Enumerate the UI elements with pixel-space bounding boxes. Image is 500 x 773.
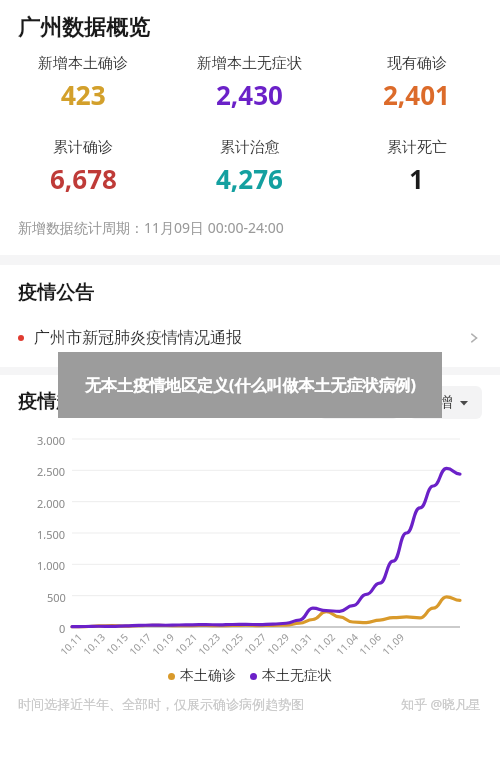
staticText: 10.19	[149, 630, 177, 658]
staticText: 2,500	[37, 464, 66, 476]
staticText: 10.17	[126, 630, 154, 658]
staticText: 疫情趋势	[18, 390, 94, 414]
staticText: 新增本土确诊	[38, 54, 128, 73]
staticText: 500	[47, 590, 66, 602]
staticText: 10.25	[218, 630, 246, 658]
staticText: 1,500	[37, 527, 66, 539]
staticText: 6,678	[50, 161, 117, 196]
staticText: 1,000	[37, 558, 66, 570]
staticText: 累计确诊	[53, 138, 113, 157]
button[interactable]: 广州市新冠肺炎疫情情况通报	[0, 319, 500, 357]
staticText: 2,000	[37, 496, 66, 508]
staticText: 时间选择近半年、全部时，仅展示确诊病例趋势图	[18, 696, 304, 712]
staticText: 新增本土无症状	[197, 54, 302, 73]
staticText: 累计死亡	[387, 138, 447, 157]
staticText: 广州市新冠肺炎疫情情况通报	[34, 328, 466, 348]
staticText: 0	[59, 621, 66, 633]
staticText: 10.27	[241, 630, 269, 658]
staticText: 423	[61, 77, 106, 112]
button[interactable]: 30 天	[319, 385, 399, 419]
staticText: 本土确诊	[180, 667, 236, 685]
staticText: 疫情公告	[18, 281, 94, 305]
staticText: 1	[409, 161, 424, 196]
staticText: 10.15	[103, 630, 131, 658]
staticText: 10.21	[172, 630, 200, 658]
staticText: 无本土疫情地区定义(什么叫做本土无症状病例)	[85, 374, 416, 396]
staticText: 本土无症状	[262, 667, 332, 685]
staticText: 11.09	[379, 630, 407, 658]
staticText: 2,430	[216, 77, 283, 112]
staticText: 10.31	[287, 630, 315, 658]
staticText: 现有确诊	[387, 54, 447, 73]
button[interactable]: 新增	[409, 386, 482, 419]
staticText: 广州数据概览	[18, 14, 150, 42]
staticText: 11.06	[356, 630, 384, 658]
staticText: 累计治愈	[220, 138, 280, 157]
staticText: 知乎 @晓凡星	[401, 695, 482, 713]
staticText: 2,401	[383, 77, 450, 112]
staticText: 10.23	[195, 630, 223, 658]
staticText: 10.13	[80, 630, 108, 658]
staticText: 新增	[423, 393, 453, 412]
staticText: 4,276	[216, 161, 283, 196]
staticText: 新增数据统计周期：11月09日 00:00-24:00	[18, 218, 284, 237]
staticText: 3,000	[37, 433, 66, 445]
staticText: 30 天	[333, 392, 370, 412]
staticText: 11.02	[310, 630, 338, 658]
staticText: 11.04	[333, 630, 361, 658]
other: More	[466, 330, 482, 346]
staticText: 10.29	[264, 630, 292, 658]
staticText: 10.11	[57, 630, 85, 658]
